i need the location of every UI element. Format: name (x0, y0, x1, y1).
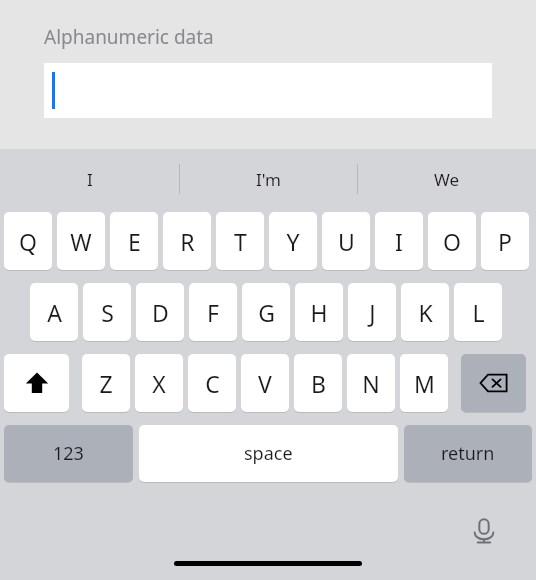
button[interactable]: Q (4, 212, 52, 270)
button[interactable]: D (136, 283, 184, 341)
staticText: U (338, 226, 355, 257)
staticText: R (180, 226, 195, 257)
button[interactable]: O (428, 212, 476, 270)
button[interactable]: Shift (4, 354, 69, 412)
button[interactable]: C (188, 354, 236, 412)
button[interactable]: 123 (4, 425, 133, 482)
staticText: H (310, 297, 328, 328)
button[interactable]: K (401, 283, 449, 341)
button[interactable]: I'm (180, 149, 357, 209)
staticText: A (47, 297, 62, 328)
button[interactable]: N (347, 354, 395, 412)
button[interactable]: V (241, 354, 289, 412)
staticText: J (369, 297, 376, 328)
button[interactable]: T (216, 212, 264, 270)
staticText: 123 (53, 441, 84, 466)
button[interactable]: H (295, 283, 343, 341)
button[interactable]: We (358, 149, 536, 209)
button[interactable] (44, 63, 492, 118)
button[interactable]: L (454, 283, 502, 341)
staticText: I (87, 168, 93, 191)
staticText: X (152, 368, 166, 399)
button[interactable]: S (83, 283, 131, 341)
button[interactable]: I (0, 149, 179, 209)
button[interactable]: X (135, 354, 183, 412)
staticText: C (205, 368, 220, 399)
button[interactable]: W (57, 212, 105, 270)
button[interactable]: Z (82, 354, 130, 412)
staticText: W (70, 226, 92, 257)
staticText: L (472, 297, 485, 328)
staticText: We (434, 168, 460, 191)
staticText: Y (286, 226, 300, 257)
button[interactable]: R (163, 212, 211, 270)
button[interactable]: Y (269, 212, 317, 270)
button[interactable]: space (139, 425, 398, 482)
staticText: I'm (256, 168, 281, 191)
button[interactable]: M (400, 354, 448, 412)
staticText: space (244, 441, 293, 466)
button[interactable]: P (481, 212, 529, 270)
staticText: M (414, 368, 435, 399)
staticText: I (395, 226, 403, 257)
staticText: B (311, 368, 326, 399)
button[interactable]: Backspace (461, 354, 526, 412)
staticText: S (101, 297, 114, 328)
staticText: N (362, 368, 380, 399)
staticText: Z (99, 368, 113, 399)
staticText: T (234, 226, 247, 257)
staticText: Alphanumeric data (44, 24, 214, 50)
button[interactable]: B (294, 354, 342, 412)
button[interactable]: E (110, 212, 158, 270)
staticText: O (443, 226, 461, 257)
button[interactable]: F (189, 283, 237, 341)
button[interactable]: J (348, 283, 396, 341)
staticText: K (418, 297, 433, 328)
staticText: P (498, 226, 512, 257)
button[interactable]: Dictation (460, 507, 508, 555)
button[interactable]: return (404, 425, 532, 482)
button[interactable]: U (322, 212, 370, 270)
staticText: return (441, 441, 495, 466)
staticText: F (207, 297, 219, 328)
staticText: G (258, 297, 275, 328)
staticText: E (128, 226, 141, 257)
staticText: D (152, 297, 169, 328)
button[interactable]: I (375, 212, 423, 270)
staticText: Q (19, 226, 37, 257)
button[interactable]: A (30, 283, 78, 341)
button[interactable]: G (242, 283, 290, 341)
staticText: V (258, 368, 272, 399)
